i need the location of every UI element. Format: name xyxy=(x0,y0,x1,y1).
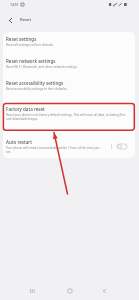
button[interactable]: Reset accessibility settings xyxy=(3,80,135,91)
staticText: Your phone will restart automatically wi… xyxy=(6,146,102,154)
staticText: Reset network settings xyxy=(6,58,56,64)
button[interactable]: Auto restart xyxy=(3,139,111,154)
button[interactable]: Reset network settings xyxy=(3,58,135,69)
staticText: Reset settings xyxy=(6,36,37,42)
staticText: Auto restart xyxy=(6,139,32,145)
button[interactable]: Recent apps xyxy=(23,282,41,300)
staticText: Reset xyxy=(20,17,32,23)
staticText: Reset your phone to its factory default … xyxy=(6,113,128,121)
staticText: Factory data reset xyxy=(6,106,45,112)
button[interactable]: Factory data reset xyxy=(3,106,135,121)
staticText: 14:51 xyxy=(10,2,19,7)
button[interactable]: Back xyxy=(95,282,113,300)
staticText: Reset accessibility settings xyxy=(6,80,64,86)
button[interactable]: Navigate up xyxy=(1,11,19,29)
staticText: Reset all settings to their defaults. xyxy=(6,43,54,47)
button[interactable]: Reset settings xyxy=(3,36,135,47)
staticText: Reset Wi-Fi, Bluetooth, and other networ… xyxy=(6,65,78,69)
button[interactable]: Home xyxy=(61,282,79,300)
staticText: Reset accessibility settings to their de… xyxy=(6,87,68,91)
button[interactable]: Auto restart toggle, off xyxy=(116,142,127,151)
